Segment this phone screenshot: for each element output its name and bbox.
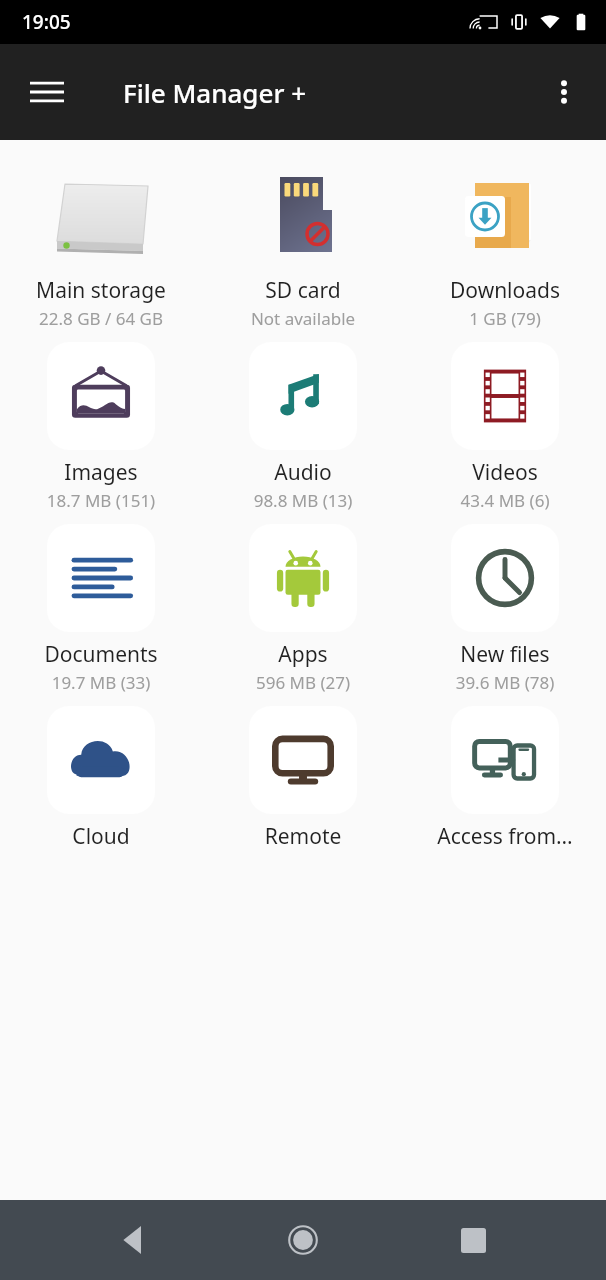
staticText: Access from…	[406, 822, 604, 851]
button[interactable]: Documents	[0, 518, 202, 700]
staticText: Remote	[204, 822, 402, 851]
staticText: File Manager +	[123, 75, 307, 110]
staticText: 22.8 GB / 64 GB	[0, 307, 202, 330]
staticText: 19.7 MB (33)	[0, 671, 202, 694]
button[interactable]: Videos	[404, 336, 606, 518]
staticText: Apps	[204, 640, 402, 669]
staticText: 18.7 MB (151)	[0, 489, 202, 512]
button[interactable]: Access from…	[404, 700, 606, 878]
staticText: 1 GB (79)	[404, 307, 606, 330]
staticText: SD card	[204, 276, 402, 305]
staticText: New files	[406, 640, 604, 669]
staticText: 98.8 MB (13)	[202, 489, 404, 512]
button[interactable]: Main storage	[0, 154, 202, 336]
staticText: 596 MB (27)	[202, 671, 404, 694]
staticText: 39.6 MB (78)	[404, 671, 606, 694]
staticText: Images	[2, 458, 200, 487]
staticText: Not available	[202, 307, 404, 330]
button[interactable]: Open navigation drawer	[16, 61, 78, 123]
staticText: Main storage	[2, 276, 200, 305]
button[interactable]: New files	[404, 518, 606, 700]
button[interactable]: More options	[534, 62, 594, 122]
button[interactable]: Recent apps	[437, 1204, 509, 1276]
staticText: 19:05	[22, 9, 71, 35]
button[interactable]: Remote	[202, 700, 404, 878]
staticText: Audio	[204, 458, 402, 487]
button[interactable]: Cloud	[0, 700, 202, 878]
staticText: Downloads	[406, 276, 604, 305]
button[interactable]: Images	[0, 336, 202, 518]
button[interactable]: Home	[267, 1204, 339, 1276]
staticText: Videos	[406, 458, 604, 487]
staticText: Cloud	[2, 822, 200, 851]
button[interactable]: Downloads	[404, 154, 606, 336]
button[interactable]: SD card	[202, 154, 404, 336]
staticText: Documents	[2, 640, 200, 669]
staticText: 43.4 MB (6)	[404, 489, 606, 512]
button[interactable]: Audio	[202, 336, 404, 518]
button[interactable]: Apps	[202, 518, 404, 700]
button[interactable]: Back	[98, 1204, 170, 1276]
